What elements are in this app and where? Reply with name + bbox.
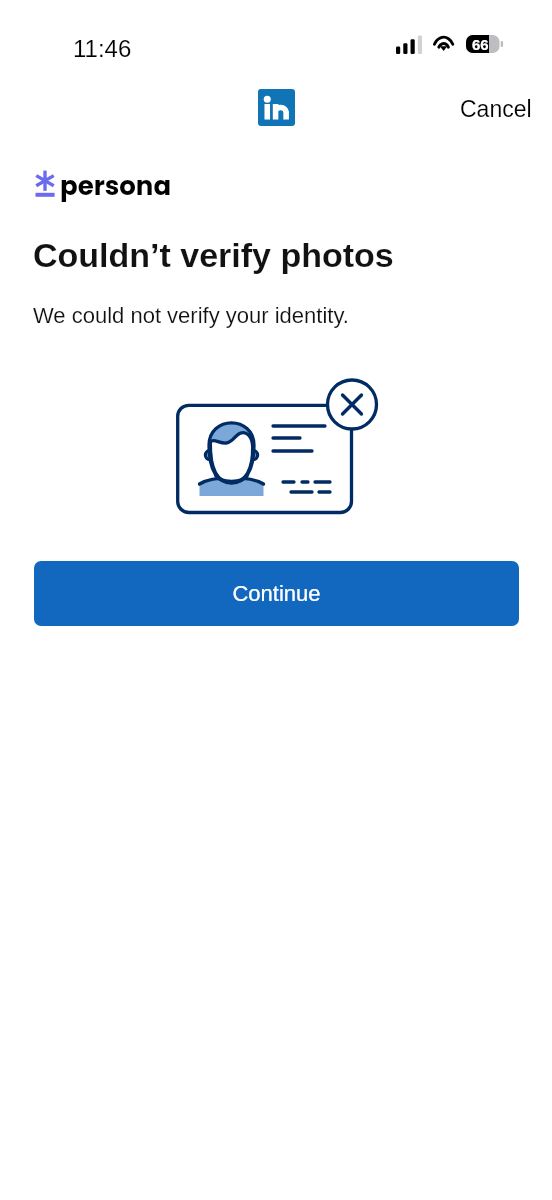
button[interactable]: LinkedIn [258, 89, 295, 126]
staticText: Couldn’t verify photos [33, 236, 394, 274]
staticText: Continue [232, 581, 321, 606]
staticText: We could not verify your identity. [33, 303, 349, 328]
button[interactable]: Continue [34, 561, 519, 626]
staticText: persona [60, 168, 172, 204]
staticText: Cancel [460, 96, 532, 122]
button[interactable]: Cancel [437, 88, 552, 130]
staticText: 11:46 [73, 35, 132, 62]
staticText: 66 [472, 36, 489, 53]
